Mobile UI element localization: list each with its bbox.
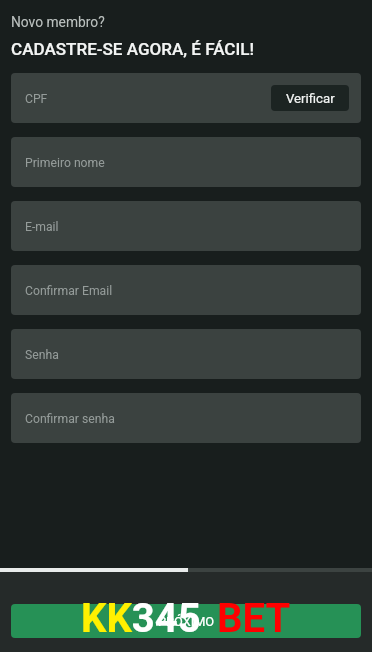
staticText: Confirmar senha: [25, 412, 115, 426]
staticText: Senha: [25, 348, 59, 362]
button[interactable]: PRÓXIMO: [11, 604, 361, 638]
button[interactable]: E-mail: [11, 201, 361, 251]
staticText: Verificar: [286, 91, 335, 106]
button[interactable]: Verificar: [271, 85, 349, 111]
staticText: E-mail: [25, 220, 59, 234]
other: Progresso do cadastro: [0, 568, 372, 572]
button[interactable]: CPF: [11, 73, 361, 123]
staticText: CADASTRE-SE AGORA, É FÁCIL!: [11, 39, 254, 59]
button[interactable]: Confirmar senha: [11, 393, 361, 443]
button[interactable]: Confirmar Email: [11, 265, 361, 315]
staticText: PRÓXIMO: [158, 614, 215, 629]
staticText: KK345 BET: [81, 595, 291, 642]
staticText: CPF: [25, 92, 48, 106]
button[interactable]: Senha: [11, 329, 361, 379]
button[interactable]: Primeiro nome: [11, 137, 361, 187]
staticText: Novo membro?: [11, 14, 105, 30]
staticText: Confirmar Email: [25, 284, 113, 298]
staticText: Primeiro nome: [25, 156, 105, 170]
